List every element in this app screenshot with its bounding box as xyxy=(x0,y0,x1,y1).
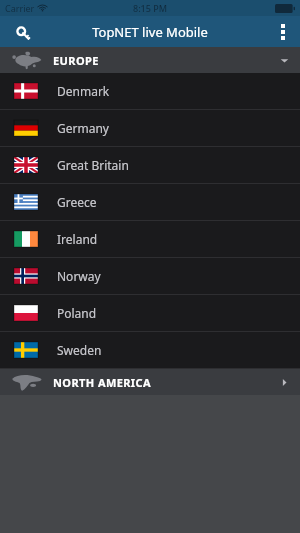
button[interactable]: NORTH AMERICA xyxy=(0,369,300,395)
staticText: Ireland xyxy=(57,231,98,247)
staticText: Carrier xyxy=(5,2,35,14)
staticText: Poland xyxy=(57,305,97,321)
button[interactable]: Great Britain xyxy=(0,147,300,184)
button[interactable]: Germany xyxy=(0,110,300,147)
button[interactable]: Denmark xyxy=(0,73,300,110)
button[interactable]: Greece xyxy=(0,184,300,221)
staticText: Norway xyxy=(57,268,101,284)
staticText: EUROPE xyxy=(53,53,99,68)
button[interactable]: Login xyxy=(0,16,52,47)
staticText: Great Britain xyxy=(57,157,129,173)
button[interactable]: Poland xyxy=(0,295,300,332)
staticText: NORTH AMERICA xyxy=(53,375,151,390)
staticText: Denmark xyxy=(57,83,110,99)
button[interactable]: EUROPE xyxy=(0,47,300,73)
staticText: TopNET live Mobile xyxy=(92,23,208,41)
staticText: 8:15 PM xyxy=(133,2,167,14)
button[interactable]: Ireland xyxy=(0,221,300,258)
button[interactable]: More options xyxy=(266,16,300,47)
staticText: Greece xyxy=(57,194,97,210)
button[interactable]: Sweden xyxy=(0,332,300,369)
button[interactable]: Norway xyxy=(0,258,300,295)
staticText: Sweden xyxy=(57,342,102,358)
staticText: Germany xyxy=(57,120,109,136)
